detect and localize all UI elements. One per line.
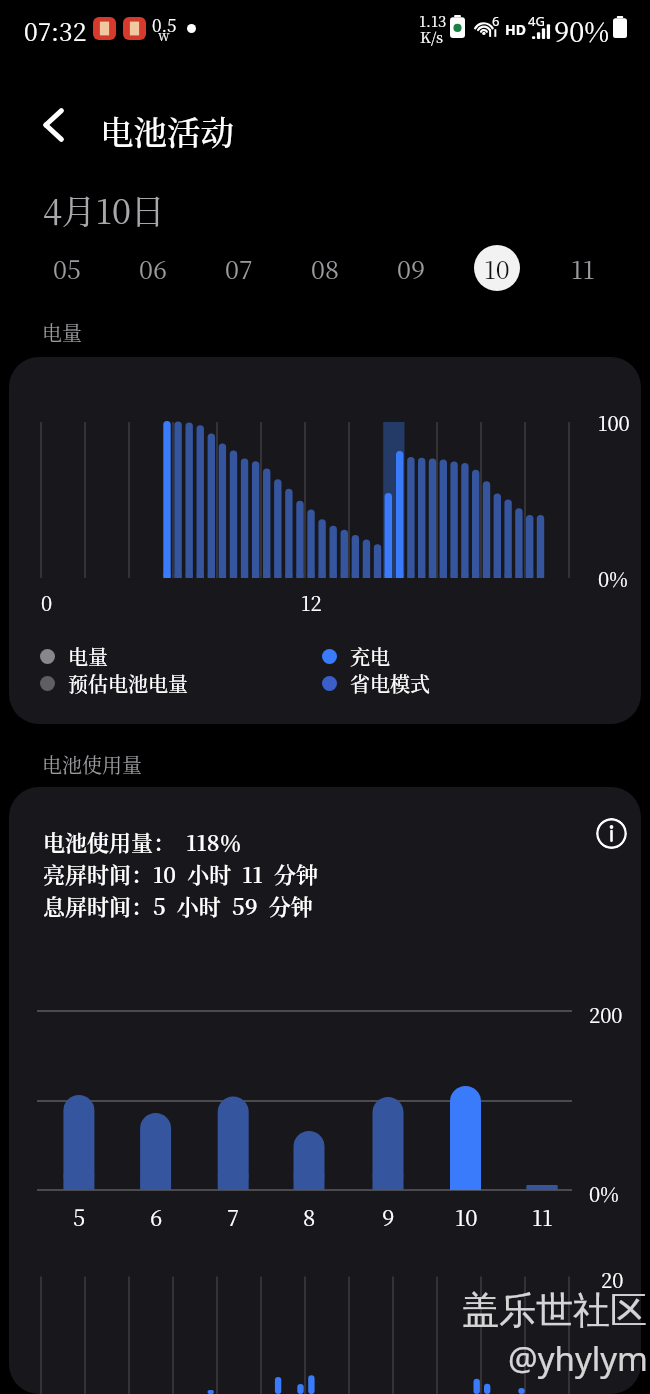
staticText: 0%: [589, 1179, 619, 1208]
button[interactable]: 10: [474, 245, 520, 291]
staticText: 息屏时间：5 小时 59 分钟: [43, 890, 313, 922]
staticText: 6: [492, 12, 500, 30]
button[interactable]: Back: [30, 102, 76, 148]
staticText: 20: [601, 1265, 624, 1294]
staticText: K/s: [420, 26, 444, 48]
staticText: 电量: [42, 318, 82, 347]
staticText: 省电模式: [350, 669, 430, 698]
staticText: W: [158, 28, 170, 44]
staticText: 电池活动: [100, 106, 234, 154]
staticText: 200: [589, 1000, 623, 1029]
staticText: @yhylym: [508, 1336, 648, 1381]
staticText: 09: [397, 250, 425, 286]
staticText: 90%: [554, 11, 610, 50]
staticText: 4G: [528, 12, 545, 30]
button[interactable]: 09: [388, 245, 434, 291]
staticText: 08: [311, 250, 339, 286]
staticText: 07: [225, 250, 253, 286]
button[interactable]: 05: [44, 245, 90, 291]
staticText: 7: [227, 1201, 240, 1233]
staticText: 0.5: [152, 12, 177, 36]
button[interactable]: Information: [596, 818, 627, 849]
staticText: 电量: [68, 642, 108, 671]
staticText: 0: [41, 588, 53, 617]
staticText: 10: [455, 1201, 478, 1233]
staticText: 05: [53, 250, 81, 286]
staticText: 电池使用量： 118％: [43, 826, 242, 858]
staticText: 11: [532, 1201, 553, 1233]
staticText: 100: [598, 408, 630, 437]
staticText: 4月10日: [43, 185, 165, 234]
staticText: 电池使用量: [42, 750, 142, 779]
staticText: 盖乐世社区: [462, 1287, 647, 1334]
staticText: 06: [139, 250, 167, 286]
staticText: 07:32: [24, 13, 87, 48]
staticText: 11: [571, 250, 595, 286]
staticText: 充电: [350, 642, 390, 671]
staticText: 5: [73, 1201, 86, 1233]
staticText: HD: [505, 20, 526, 39]
staticText: 10: [484, 250, 510, 286]
staticText: 亮屏时间：10 小时 11 分钟: [43, 858, 319, 890]
button[interactable]: 06: [130, 245, 176, 291]
button[interactable]: 07: [216, 245, 262, 291]
button[interactable]: 11: [560, 245, 606, 291]
staticText: 9: [382, 1201, 395, 1233]
staticText: 预估电池电量: [68, 669, 188, 698]
staticText: 1.13: [419, 10, 447, 32]
staticText: 6: [150, 1201, 163, 1233]
staticText: 0%: [598, 564, 628, 593]
staticText: 8: [303, 1201, 316, 1233]
button[interactable]: 08: [302, 245, 348, 291]
staticText: 12: [301, 588, 322, 617]
